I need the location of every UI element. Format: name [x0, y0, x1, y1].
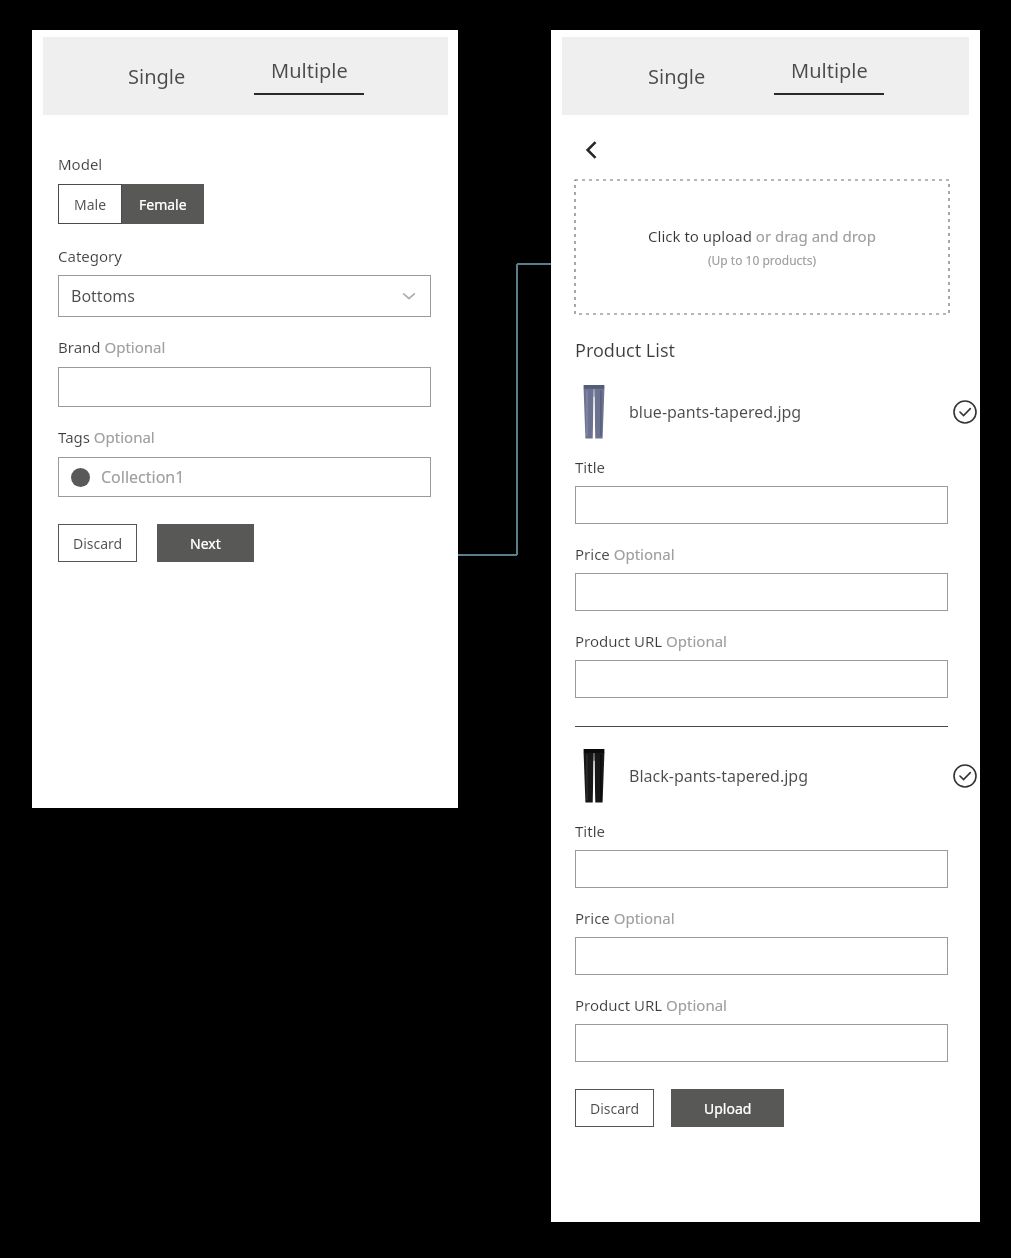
button[interactable]	[58, 367, 431, 407]
staticText: Collection1	[101, 466, 185, 488]
button[interactable]: Selected	[950, 761, 980, 791]
staticText: Category	[58, 246, 122, 266]
button[interactable]	[575, 486, 948, 524]
button[interactable]: Male	[58, 184, 122, 224]
staticText: Bottoms	[71, 285, 400, 307]
button[interactable]	[575, 1024, 948, 1062]
button[interactable]: Multiple	[244, 55, 374, 97]
button[interactable]: Collection1	[58, 457, 431, 497]
button[interactable]: Back	[575, 133, 609, 167]
staticText: Title	[575, 457, 605, 477]
button[interactable]: Single	[118, 55, 196, 98]
button[interactable]: Female	[122, 184, 204, 224]
staticText: Upload	[704, 1099, 752, 1118]
staticText: (Up to 10 products)	[708, 252, 817, 268]
button[interactable]	[575, 573, 948, 611]
button[interactable]: Click to upload or drag and drop	[575, 180, 949, 314]
button[interactable]: Bottoms	[58, 275, 431, 317]
staticText: Tags Optional	[58, 427, 155, 447]
button[interactable]: Upload	[671, 1089, 784, 1127]
staticText: Male	[74, 195, 107, 214]
staticText: Discard	[590, 1099, 640, 1118]
button[interactable]: Selected	[950, 397, 980, 427]
button[interactable]: blue-pants-tapered.jpg	[575, 385, 980, 439]
button[interactable]: Black-pants-tapered.jpg	[575, 749, 980, 803]
staticText: Price Optional	[575, 908, 675, 928]
staticText: Product URL Optional	[575, 995, 727, 1015]
staticText: Brand Optional	[58, 337, 166, 357]
staticText: Model	[58, 154, 103, 174]
button[interactable]	[575, 937, 948, 975]
button[interactable]	[575, 850, 948, 888]
staticText: Single	[648, 63, 706, 90]
staticText: Click to upload or drag and drop	[648, 226, 876, 246]
staticText: Female	[139, 195, 187, 214]
button[interactable]: Multiple	[764, 55, 894, 97]
staticText: Title	[575, 821, 605, 841]
staticText: Single	[128, 63, 186, 90]
staticText: Next	[190, 534, 221, 553]
staticText: Black-pants-tapered.jpg	[629, 765, 950, 787]
staticText: Multiple	[791, 57, 868, 84]
staticText: Product List	[575, 338, 676, 363]
button[interactable]: Discard	[58, 524, 137, 562]
button[interactable]: Next	[157, 524, 254, 562]
button[interactable]: Single	[638, 55, 716, 98]
button[interactable]: Discard	[575, 1089, 654, 1127]
button[interactable]	[575, 660, 948, 698]
staticText: Product URL Optional	[575, 631, 727, 651]
staticText: Price Optional	[575, 544, 675, 564]
staticText: Discard	[73, 534, 123, 553]
staticText: blue-pants-tapered.jpg	[629, 401, 950, 423]
staticText: Multiple	[271, 57, 348, 84]
